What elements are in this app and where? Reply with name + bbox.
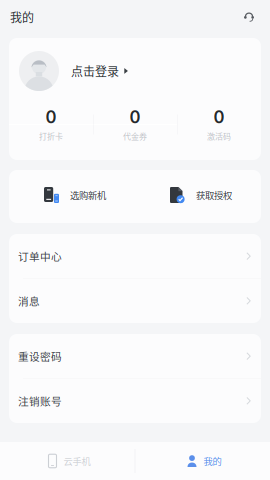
button[interactable]: 消息	[9, 279, 261, 323]
button[interactable]: 云手机	[0, 442, 135, 480]
button[interactable]: 获取授权	[135, 170, 261, 223]
staticText: 打折卡	[39, 130, 63, 142]
staticText: 重设密码	[18, 348, 62, 364]
button[interactable]: 重设密码	[9, 334, 261, 378]
button[interactable]: 0	[9, 104, 93, 145]
button[interactable]: 点击登录	[9, 38, 261, 104]
button[interactable]: 选购新机	[9, 170, 135, 223]
button[interactable]: 我的	[135, 442, 270, 480]
staticText: 订单中心	[18, 248, 62, 264]
staticText: 选购新机	[70, 188, 106, 202]
staticText: 激活码	[207, 130, 231, 142]
button[interactable]: 0	[93, 104, 177, 145]
staticText: 0	[45, 107, 56, 127]
button[interactable]: 注销账号	[9, 379, 261, 423]
staticText: 0	[213, 107, 224, 127]
staticText: 注销账号	[18, 393, 62, 408]
staticText: 0	[129, 107, 140, 127]
staticText: 我的	[203, 454, 221, 468]
staticText: 获取授权	[196, 188, 232, 202]
staticText: 我的	[10, 8, 34, 26]
button[interactable]: 0	[177, 104, 261, 145]
staticText: 代金券	[123, 130, 147, 142]
staticText: 消息	[18, 293, 40, 308]
staticText: 点击登录	[71, 62, 119, 80]
button[interactable]: 订单中心	[9, 234, 261, 278]
button[interactable]: 客服	[238, 6, 260, 28]
staticText: 云手机	[63, 454, 90, 468]
